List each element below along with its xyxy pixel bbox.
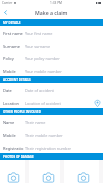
button[interactable]: First name: [0, 26, 103, 39]
staticText: Location of accident: [25, 101, 94, 106]
staticText: Your policy number: [25, 56, 101, 61]
staticText: Name: [3, 120, 25, 125]
staticText: Their registration number: [25, 146, 101, 151]
button[interactable]: Mobile: [0, 64, 103, 76]
staticText: MY DETAILS: [3, 21, 21, 25]
button[interactable]: Policy: [0, 51, 103, 64]
button[interactable]: Back: [0, 6, 12, 19]
staticText: Their mobile number: [25, 133, 101, 138]
staticText: PHOTOS OF DAMAGE: [3, 155, 34, 159]
staticText: Your mobile number: [25, 69, 101, 74]
staticText: ACCIDENT DETAILS: [3, 78, 31, 82]
button[interactable]: Location: [0, 96, 103, 108]
staticText: Mobile: [3, 133, 25, 138]
staticText: Location: [3, 101, 25, 106]
staticText: First name: [3, 31, 25, 36]
staticText: Your first name: [25, 31, 101, 36]
staticText: Date: [3, 88, 25, 93]
staticText: Registration: [3, 146, 25, 151]
button[interactable]: Add photo: [64, 160, 99, 183]
staticText: Surname: [3, 44, 25, 49]
button[interactable]: Mobile: [0, 128, 103, 141]
button[interactable]: Registration: [0, 141, 103, 153]
staticText: Mobile: [3, 69, 25, 74]
button[interactable]: Date: [0, 83, 103, 96]
staticText: OTHER PEOPLE INVOLVED: [3, 110, 41, 114]
button[interactable]: Surname: [0, 39, 103, 51]
button[interactable]: Name: [0, 115, 103, 128]
staticText: Your surname: [25, 44, 101, 49]
staticText: Date of accident: [25, 88, 101, 93]
button[interactable]: Add photo: [0, 160, 25, 183]
staticText: Carrier: [2, 1, 13, 5]
staticText: Policy: [3, 56, 25, 61]
button[interactable]: Add photo: [29, 160, 60, 183]
staticText: Make a claim: [35, 9, 68, 16]
staticText: 1:33 PM: [50, 1, 62, 5]
staticText: Their name: [25, 120, 101, 125]
